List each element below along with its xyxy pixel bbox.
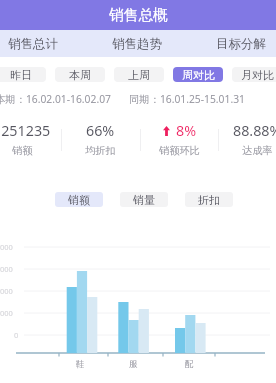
button[interactable]: 销售趋势 [85, 30, 189, 57]
staticText: 88.88% [233, 121, 276, 140]
staticText: 66% [86, 121, 115, 140]
button[interactable]: 1251235 [0, 121, 66, 161]
staticText: 昨日 [10, 68, 32, 82]
staticText: 同期：16.01.25-15.01.31 [129, 92, 245, 106]
staticText: 销额 [12, 144, 33, 157]
button[interactable]: 月对比 [232, 67, 276, 82]
button[interactable]: 销额 [55, 192, 103, 207]
staticText: 000 [0, 242, 13, 252]
staticText: 销售总概 [109, 6, 168, 25]
staticText: 000 [0, 308, 13, 318]
staticText: 本周 [69, 68, 91, 82]
staticText: 000 [0, 264, 13, 274]
staticText: 000 [0, 286, 13, 296]
staticText: 达成率 [242, 144, 273, 157]
button[interactable]: 88.88% [213, 121, 276, 161]
staticText: 本期：16.02.01-16.02.07 [0, 92, 111, 106]
staticText: 均折扣 [85, 144, 116, 157]
staticText: 配 [185, 359, 194, 370]
staticText: 服 [129, 359, 138, 370]
button[interactable]: 上周 [114, 67, 164, 82]
button[interactable]: 目标分解 [189, 30, 276, 57]
staticText: 1251235 [0, 121, 51, 140]
staticText: 月对比 [241, 68, 274, 82]
button[interactable]: 销售总计 [0, 30, 85, 57]
staticText: 8% [176, 121, 197, 140]
staticText: 目标分解 [216, 36, 266, 52]
staticText: 鞋 [76, 359, 85, 370]
staticText: 折扣 [198, 193, 220, 207]
staticText: 销额环比 [159, 144, 200, 157]
button[interactable]: 昨日 [0, 67, 46, 82]
staticText: 周对比 [182, 68, 215, 82]
button[interactable]: 周对比 [173, 67, 223, 82]
staticText: 销售总计 [8, 36, 58, 52]
staticText: 销量 [133, 193, 155, 207]
button[interactable]: 销量 [120, 192, 168, 207]
staticText: 0 [14, 330, 19, 340]
staticText: 上周 [128, 68, 150, 82]
button[interactable]: 8% [135, 121, 223, 161]
staticText: 销额 [68, 193, 90, 207]
button[interactable]: 本周 [55, 67, 105, 82]
staticText: 销售趋势 [112, 36, 162, 52]
button[interactable]: 66% [56, 121, 144, 161]
button[interactable]: 折扣 [185, 192, 233, 207]
